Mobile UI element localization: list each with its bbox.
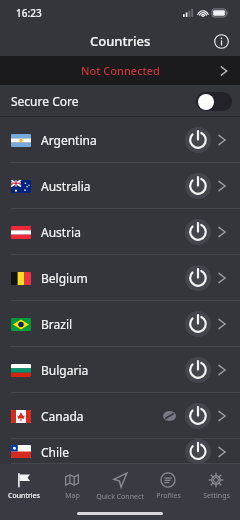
staticText: Settings xyxy=(203,491,230,501)
staticText: Map xyxy=(65,491,80,501)
button[interactable]: Connect to Chile xyxy=(185,439,211,464)
button[interactable]: Profiles xyxy=(144,464,192,508)
button[interactable]: Connect to Brazil xyxy=(185,311,211,337)
button[interactable]: Countries xyxy=(0,464,48,508)
staticText: Argentina xyxy=(41,132,185,148)
button[interactable]: Connect to Bulgaria xyxy=(185,357,211,383)
button[interactable]: Open Austria servers xyxy=(211,221,233,243)
button[interactable]: Australia xyxy=(0,163,240,209)
staticText: Not Connected xyxy=(81,63,160,78)
staticText: Countries xyxy=(90,32,151,50)
staticText: 16:23 xyxy=(16,6,42,20)
staticText: Countries xyxy=(8,491,40,501)
button[interactable]: Connect to Canada xyxy=(185,403,211,429)
button[interactable]: Open Bulgaria servers xyxy=(211,359,233,381)
staticText: Australia xyxy=(41,178,185,194)
staticText: Austria xyxy=(41,224,185,240)
staticText: Bulgaria xyxy=(41,362,185,378)
staticText: Belgium xyxy=(41,270,185,286)
button[interactable]: Settings xyxy=(192,464,240,508)
staticText: Canada xyxy=(41,408,163,424)
button[interactable]: Info xyxy=(210,30,232,52)
button[interactable]: Argentina xyxy=(0,117,240,163)
staticText: Chile xyxy=(41,444,185,460)
button[interactable]: Belgium xyxy=(0,255,240,301)
button[interactable]: Connect to Belgium xyxy=(185,265,211,291)
button[interactable]: Not Connected xyxy=(0,56,240,85)
button[interactable]: Connect to Austria xyxy=(185,219,211,245)
button[interactable]: Open Argentina servers xyxy=(211,129,233,151)
button[interactable]: Secure Core toggle xyxy=(196,92,232,111)
button[interactable]: Map xyxy=(48,464,96,508)
button[interactable]: Quick Connect xyxy=(96,464,144,508)
button[interactable]: Connect to Australia xyxy=(185,173,211,199)
button[interactable]: Connect to Argentina xyxy=(185,127,211,153)
staticText: Secure Core xyxy=(11,93,79,109)
button[interactable]: Bulgaria xyxy=(0,347,240,393)
button[interactable]: Secure Core xyxy=(0,85,240,117)
button[interactable]: Open Australia servers xyxy=(211,175,233,197)
staticText: Profiles xyxy=(156,491,181,501)
button[interactable]: Canada xyxy=(0,393,240,439)
button[interactable]: Open Brazil servers xyxy=(211,313,233,335)
button[interactable]: Brazil xyxy=(0,301,240,347)
button[interactable]: Chile xyxy=(0,439,240,464)
button[interactable]: Open Belgium servers xyxy=(211,267,233,289)
button[interactable]: Open Canada servers xyxy=(211,405,233,427)
button[interactable]: Open Chile servers xyxy=(211,441,233,463)
staticText: Brazil xyxy=(41,316,185,332)
button[interactable]: Austria xyxy=(0,209,240,255)
staticText: Quick Connect xyxy=(96,492,144,502)
